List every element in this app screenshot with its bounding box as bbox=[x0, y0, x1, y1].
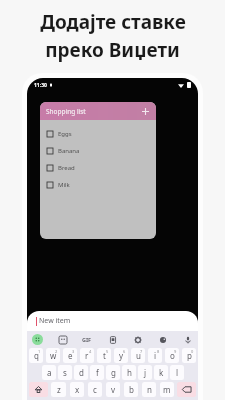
button[interactable]: g bbox=[106, 365, 120, 380]
button[interactable]: a bbox=[42, 365, 56, 380]
button[interactable]: Stickers bbox=[57, 334, 68, 345]
staticText: e bbox=[68, 350, 73, 361]
staticText: k bbox=[159, 367, 164, 378]
staticText: 7 bbox=[140, 349, 143, 354]
staticText: c bbox=[93, 384, 97, 395]
button[interactable]: Clipboard bbox=[107, 334, 118, 345]
staticText: y bbox=[119, 350, 124, 361]
button[interactable]: m bbox=[160, 382, 174, 397]
staticText: 2 bbox=[55, 349, 58, 354]
staticText: Bread bbox=[58, 164, 75, 172]
button[interactable]: d bbox=[74, 365, 88, 380]
staticText: Eggs bbox=[58, 130, 72, 138]
button[interactable]: e bbox=[63, 348, 77, 363]
staticText: b bbox=[129, 384, 134, 395]
button[interactable]: c bbox=[88, 382, 102, 397]
staticText: a bbox=[47, 367, 52, 378]
staticText: t bbox=[103, 350, 106, 361]
button[interactable]: p bbox=[182, 348, 196, 363]
staticText: i bbox=[154, 350, 157, 361]
button[interactable]: Eggs bbox=[47, 125, 156, 142]
button[interactable]: t bbox=[97, 348, 111, 363]
button[interactable]: Settings bbox=[132, 334, 143, 345]
staticText: 1 bbox=[38, 349, 41, 354]
button[interactable]: z bbox=[51, 382, 66, 397]
button[interactable]: i bbox=[148, 348, 162, 363]
button[interactable]: l bbox=[170, 365, 184, 380]
button[interactable]: New item bbox=[27, 311, 198, 331]
button[interactable]: u bbox=[131, 348, 145, 363]
staticText: преко Виџети bbox=[45, 37, 180, 63]
staticText: 0 bbox=[191, 349, 194, 354]
button[interactable]: w bbox=[46, 348, 60, 363]
button[interactable]: v bbox=[106, 382, 120, 397]
staticText: w bbox=[50, 350, 57, 361]
button[interactable]: Voice input bbox=[182, 334, 193, 345]
button[interactable]: Themes bbox=[157, 334, 168, 345]
staticText: Додајте ставке bbox=[40, 9, 186, 35]
staticText: f bbox=[96, 367, 99, 378]
button[interactable]: f bbox=[90, 365, 104, 380]
staticText: g bbox=[111, 367, 116, 378]
staticText: j bbox=[144, 367, 147, 378]
staticText: l bbox=[176, 367, 179, 378]
staticText: x bbox=[75, 384, 80, 395]
button[interactable]: Shopping list bbox=[40, 102, 156, 120]
staticText: 11:30 bbox=[34, 82, 47, 89]
button[interactable]: n bbox=[142, 382, 156, 397]
staticText: m bbox=[163, 384, 171, 395]
staticText: u bbox=[136, 350, 141, 361]
button[interactable]: x bbox=[70, 382, 84, 397]
button[interactable]: j bbox=[138, 365, 152, 380]
button[interactable]: Add item bbox=[140, 106, 150, 116]
staticText: s bbox=[63, 367, 67, 378]
staticText: Banana bbox=[58, 147, 80, 155]
staticText: 9 bbox=[174, 349, 177, 354]
staticText: p bbox=[187, 350, 192, 361]
staticText: r bbox=[85, 350, 89, 361]
staticText: q bbox=[34, 350, 39, 361]
button[interactable]: Banana bbox=[47, 142, 156, 159]
button[interactable]: o bbox=[165, 348, 179, 363]
staticText: Shopping list bbox=[46, 107, 86, 116]
button[interactable]: Google bbox=[32, 334, 43, 345]
button[interactable]: y bbox=[114, 348, 128, 363]
staticText: 5 bbox=[106, 349, 109, 354]
button[interactable]: r bbox=[80, 348, 94, 363]
button[interactable]: q bbox=[29, 348, 43, 363]
staticText: v bbox=[111, 384, 116, 395]
staticText: d bbox=[79, 367, 84, 378]
staticText: Milk bbox=[58, 181, 70, 189]
staticText: 3 bbox=[72, 349, 75, 354]
staticText: h bbox=[127, 367, 132, 378]
button[interactable]: Milk bbox=[47, 176, 156, 193]
staticText: New item bbox=[39, 316, 71, 326]
button[interactable]: s bbox=[58, 365, 72, 380]
button[interactable]: Shift bbox=[29, 382, 48, 397]
button[interactable]: Backspace bbox=[177, 382, 196, 397]
staticText: n bbox=[147, 384, 152, 395]
button[interactable]: h bbox=[122, 365, 136, 380]
staticText: 8 bbox=[157, 349, 160, 354]
staticText: 6 bbox=[123, 349, 126, 354]
staticText: 4 bbox=[89, 349, 92, 354]
button[interactable]: GIF bbox=[82, 336, 92, 343]
button[interactable]: Bread bbox=[47, 159, 156, 176]
staticText: z bbox=[57, 384, 61, 395]
button[interactable]: k bbox=[154, 365, 168, 380]
staticText: o bbox=[170, 350, 175, 361]
button[interactable]: b bbox=[124, 382, 138, 397]
